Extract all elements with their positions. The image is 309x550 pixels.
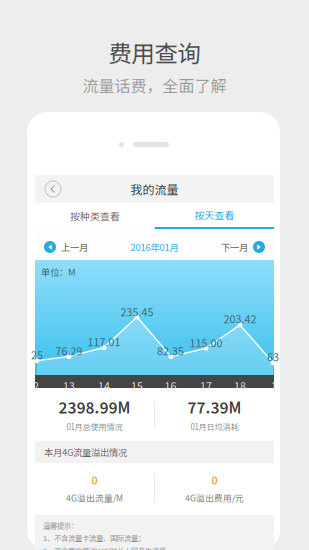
- staticText: 25: [31, 347, 43, 362]
- staticText: 2、不含赛内赠送WIFI时长上网产生流量。: [43, 545, 173, 550]
- staticText: 01月总使用情况: [66, 421, 122, 432]
- button[interactable]: 下一月: [221, 234, 265, 260]
- staticText: 1: [271, 378, 277, 393]
- staticText: 0: [211, 472, 217, 487]
- button[interactable]: 按种类查看: [35, 204, 154, 228]
- button[interactable]: 按天查看: [154, 203, 274, 229]
- staticText: 17: [200, 378, 212, 393]
- staticText: 115.00: [189, 335, 222, 350]
- staticText: 13: [63, 378, 75, 393]
- staticText: 15: [131, 378, 143, 393]
- button[interactable]: 上一月: [44, 234, 88, 260]
- staticText: 本月4G流量溢出情况: [44, 445, 127, 459]
- staticText: 费用查询: [108, 35, 200, 69]
- staticText: 117.01: [87, 334, 120, 349]
- staticText: 4G溢出流量/M: [66, 491, 123, 504]
- staticText: 203.42: [223, 311, 256, 326]
- staticText: 235.45: [120, 304, 153, 319]
- staticText: 77.39M: [187, 396, 241, 418]
- staticText: 14: [98, 378, 110, 393]
- staticText: 单位：M: [41, 265, 76, 278]
- staticText: 按天查看: [194, 208, 234, 222]
- staticText: 下一月: [221, 240, 248, 254]
- staticText: 4G溢出费用/元: [185, 491, 244, 504]
- staticText: 0: [91, 472, 97, 487]
- staticText: 01月日均消耗: [190, 421, 238, 432]
- staticText: 按种类查看: [70, 209, 120, 223]
- staticText: 16: [165, 378, 177, 393]
- staticText: 76.29: [55, 343, 82, 358]
- staticText: 2398.99M: [58, 396, 130, 418]
- staticText: 82.35: [157, 343, 184, 358]
- staticText: 流量话费，全面了解: [82, 73, 226, 97]
- staticText: 1、不含流量卡流量、国际流量；: [43, 533, 145, 543]
- staticText: 上一月: [61, 240, 88, 254]
- staticText: 63: [267, 349, 279, 364]
- staticText: 2016年01月: [130, 240, 178, 254]
- staticText: 18: [234, 378, 246, 393]
- staticText: 2: [33, 378, 39, 393]
- staticText: 温馨提示：: [43, 520, 78, 531]
- button[interactable]: Back: [39, 175, 67, 203]
- staticText: 我的流量: [130, 180, 178, 198]
